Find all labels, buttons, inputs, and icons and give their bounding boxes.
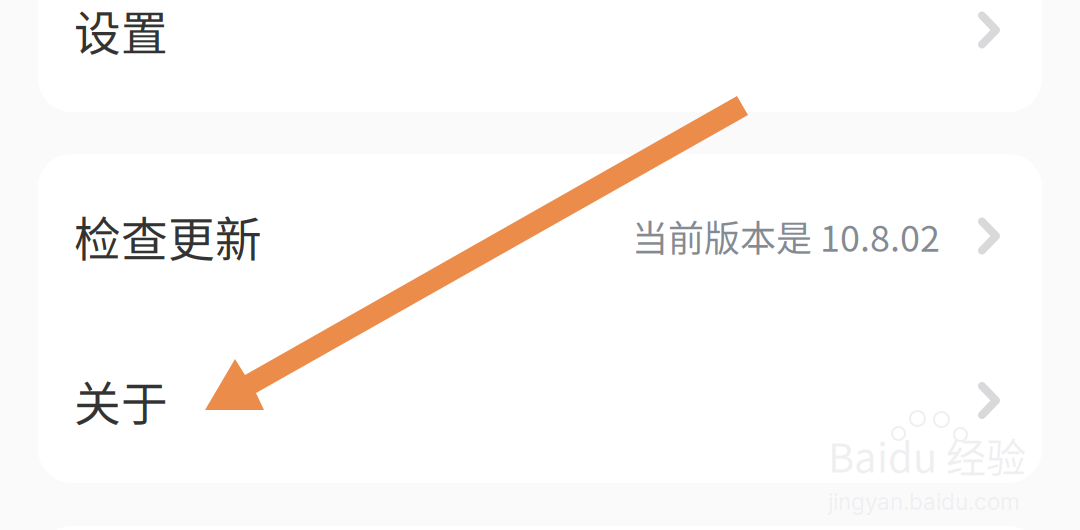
- button[interactable]: 关于: [38, 318, 1042, 483]
- staticText: Baidu 经验: [828, 426, 1026, 484]
- staticText: 当前版本是 10.8.02: [632, 210, 940, 262]
- staticText: 关于: [74, 367, 168, 434]
- staticText: 检查更新: [74, 202, 262, 270]
- staticText: jingyan.baidu.com: [828, 488, 1020, 515]
- staticText: 设置: [74, 0, 168, 64]
- button[interactable]: 设置: [38, 0, 1042, 86]
- button[interactable]: 检查更新: [38, 154, 1042, 318]
